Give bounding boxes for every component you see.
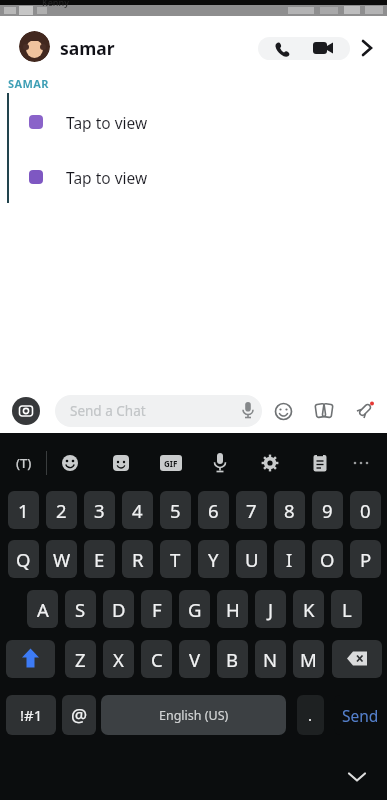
button[interactable]: @ bbox=[62, 695, 96, 735]
staticText: T bbox=[170, 547, 181, 572]
button[interactable]: GIF bbox=[160, 455, 182, 471]
staticText: W bbox=[53, 547, 71, 572]
staticText: L bbox=[342, 597, 352, 622]
staticText: GIF bbox=[164, 458, 178, 469]
staticText: 4 bbox=[132, 498, 143, 523]
staticText: . bbox=[308, 705, 313, 725]
button[interactable]: L bbox=[331, 590, 362, 628]
staticText: !#1 bbox=[20, 705, 43, 725]
staticText: 3 bbox=[94, 498, 105, 523]
button[interactable]: 0 bbox=[350, 491, 381, 529]
staticText: J bbox=[268, 597, 274, 622]
staticText: M bbox=[300, 647, 317, 672]
button[interactable]: M bbox=[293, 640, 324, 678]
staticText: C bbox=[151, 647, 163, 672]
staticText: 6 bbox=[208, 498, 219, 523]
button[interactable]: 9 bbox=[312, 491, 343, 529]
button[interactable]: D bbox=[103, 590, 134, 628]
button[interactable]: X bbox=[103, 640, 134, 678]
staticText: I bbox=[286, 547, 293, 572]
button[interactable]: B bbox=[217, 640, 248, 678]
button[interactable]: H bbox=[217, 590, 248, 628]
button[interactable] bbox=[12, 397, 40, 425]
button[interactable]: 7 bbox=[236, 491, 267, 529]
button[interactable]: 6 bbox=[198, 491, 229, 529]
staticText: Send a Chat bbox=[70, 402, 146, 420]
staticText: English (US) bbox=[159, 707, 229, 724]
button[interactable] bbox=[29, 170, 43, 184]
button[interactable] bbox=[332, 640, 382, 678]
button[interactable] bbox=[6, 640, 55, 678]
button[interactable]: . bbox=[297, 695, 324, 735]
button[interactable] bbox=[240, 401, 256, 421]
staticText: O bbox=[320, 547, 335, 572]
button[interactable] bbox=[343, 766, 371, 788]
button[interactable]: Q bbox=[8, 540, 39, 578]
button[interactable] bbox=[357, 38, 377, 58]
button[interactable] bbox=[353, 400, 375, 422]
button[interactable]: A bbox=[27, 590, 58, 628]
staticText: Tap to view bbox=[66, 112, 148, 132]
button[interactable]: P bbox=[350, 540, 381, 578]
button[interactable] bbox=[313, 400, 335, 422]
staticText: D bbox=[112, 597, 126, 622]
button[interactable] bbox=[352, 460, 370, 466]
button[interactable] bbox=[274, 402, 293, 421]
staticText: Q bbox=[16, 547, 31, 572]
button[interactable] bbox=[312, 453, 328, 473]
button[interactable]: 4 bbox=[122, 491, 153, 529]
button[interactable]: 8 bbox=[274, 491, 305, 529]
staticText: G bbox=[188, 597, 202, 622]
button[interactable]: J bbox=[255, 590, 286, 628]
staticText: A bbox=[37, 597, 49, 622]
button[interactable] bbox=[112, 454, 130, 472]
staticText: E bbox=[94, 547, 105, 572]
button[interactable]: N bbox=[255, 640, 286, 678]
button[interactable]: S bbox=[65, 590, 96, 628]
staticText: P bbox=[360, 547, 372, 572]
staticText: X bbox=[113, 647, 124, 672]
button[interactable]: V bbox=[179, 640, 210, 678]
button[interactable] bbox=[29, 115, 43, 129]
staticText: H bbox=[226, 597, 240, 622]
button[interactable]: Y bbox=[198, 540, 229, 578]
button[interactable]: E bbox=[84, 540, 115, 578]
button[interactable]: T bbox=[160, 540, 191, 578]
button[interactable]: Z bbox=[65, 640, 96, 678]
staticText: SAMAR bbox=[8, 76, 49, 90]
staticText: Send bbox=[342, 705, 379, 726]
staticText: S bbox=[75, 597, 86, 622]
button[interactable]: English (US) bbox=[101, 695, 286, 735]
staticText: R bbox=[132, 547, 144, 572]
button[interactable]: U bbox=[236, 540, 267, 578]
button[interactable]: 5 bbox=[160, 491, 191, 529]
button[interactable]: Send bbox=[334, 695, 387, 735]
staticText: N bbox=[263, 647, 278, 672]
button[interactable] bbox=[261, 454, 279, 472]
button[interactable] bbox=[61, 454, 79, 472]
button[interactable] bbox=[313, 40, 335, 56]
button[interactable] bbox=[212, 452, 228, 474]
button[interactable] bbox=[55, 395, 262, 427]
staticText: 7 bbox=[246, 498, 257, 523]
button[interactable]: 1 bbox=[8, 491, 39, 529]
staticText: 5 bbox=[170, 498, 181, 523]
button[interactable]: C bbox=[141, 640, 172, 678]
button[interactable]: I bbox=[274, 540, 305, 578]
button[interactable]: F bbox=[141, 590, 172, 628]
staticText: (T) bbox=[16, 454, 32, 472]
button[interactable]: W bbox=[46, 540, 77, 578]
staticText: Y bbox=[208, 547, 219, 572]
staticText: K bbox=[303, 597, 315, 622]
button[interactable]: G bbox=[179, 590, 210, 628]
button[interactable]: !#1 bbox=[6, 695, 56, 735]
button[interactable]: K bbox=[293, 590, 324, 628]
button[interactable]: 2 bbox=[46, 491, 77, 529]
button[interactable]: R bbox=[122, 540, 153, 578]
button[interactable]: 3 bbox=[84, 491, 115, 529]
button[interactable] bbox=[272, 38, 293, 59]
staticText: Z bbox=[75, 647, 86, 672]
button[interactable]: O bbox=[312, 540, 343, 578]
staticText: B bbox=[226, 647, 239, 672]
button[interactable] bbox=[19, 31, 50, 62]
